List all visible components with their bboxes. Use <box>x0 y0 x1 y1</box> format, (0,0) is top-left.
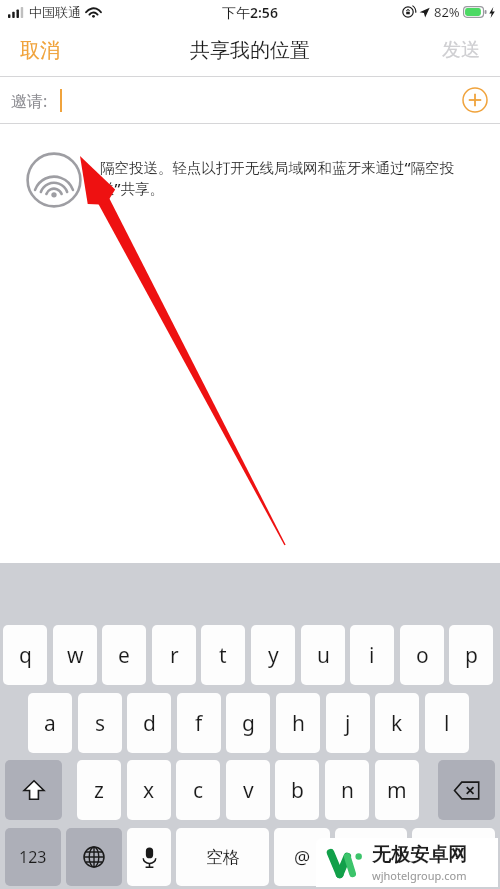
button[interactable]: i <box>350 625 394 685</box>
button[interactable]: Add contact <box>460 85 490 115</box>
staticText: h <box>292 709 305 738</box>
button[interactable]: p <box>449 625 493 685</box>
staticText: d <box>143 709 156 738</box>
staticText: 取消 <box>20 38 60 63</box>
button[interactable]: c <box>176 760 220 820</box>
staticText: f <box>195 709 203 738</box>
staticText: 中国联通 <box>29 4 81 20</box>
button[interactable]: o <box>400 625 444 685</box>
button[interactable] <box>66 828 122 886</box>
staticText: n <box>341 776 354 805</box>
staticText: z <box>94 776 104 805</box>
staticText: j <box>345 709 351 738</box>
staticText: v <box>243 776 254 805</box>
button[interactable]: u <box>301 625 345 685</box>
staticText: b <box>291 776 304 805</box>
staticText: u <box>317 641 330 670</box>
staticText: s <box>95 709 106 738</box>
staticText: k <box>391 709 403 738</box>
staticText: t <box>219 641 227 670</box>
button[interactable]: j <box>326 693 370 753</box>
staticText: 隔空投送。轻点以打开无线局域网和蓝牙来通过“隔空投送”共享。 <box>100 157 460 198</box>
staticText: x <box>143 776 155 805</box>
button[interactable]: e <box>102 625 146 685</box>
button[interactable]: n <box>325 760 369 820</box>
button[interactable]: 空格 <box>176 828 269 886</box>
button[interactable] <box>5 760 62 820</box>
button[interactable] <box>412 828 495 886</box>
button[interactable]: f <box>177 693 221 753</box>
staticText: 邀请: <box>11 90 48 112</box>
button[interactable]: z <box>77 760 121 820</box>
staticText: wjhotelgroup.com <box>372 868 467 883</box>
staticText: 无极安卓网 <box>372 843 467 867</box>
button[interactable]: 取消 <box>0 28 80 73</box>
button[interactable]: l <box>425 693 469 753</box>
button[interactable]: 发送 <box>422 28 500 72</box>
button[interactable]: @ <box>274 828 330 886</box>
button[interactable]: g <box>226 693 270 753</box>
button[interactable]: b <box>275 760 319 820</box>
staticText: m <box>387 776 407 805</box>
staticText: l <box>444 709 450 738</box>
button[interactable]: w <box>53 625 97 685</box>
button[interactable]: q <box>3 625 47 685</box>
staticText: g <box>242 709 255 738</box>
button[interactable]: 隔空投送。轻点以打开无线局域网和蓝牙来通过“隔空投送”共享。 <box>0 148 500 204</box>
staticText: 发送 <box>442 38 480 62</box>
button[interactable] <box>127 828 171 886</box>
staticText: p <box>465 641 478 670</box>
staticText: 下午2:56 <box>222 3 278 22</box>
staticText: y <box>268 641 279 670</box>
button[interactable]: m <box>375 760 419 820</box>
button[interactable]: k <box>375 693 419 753</box>
button[interactable]: h <box>276 693 320 753</box>
button[interactable] <box>335 828 407 886</box>
staticText: 123 <box>19 846 47 868</box>
staticText: @ <box>294 845 311 870</box>
button[interactable]: 123 <box>5 828 61 886</box>
button[interactable]: y <box>251 625 295 685</box>
button[interactable]: x <box>127 760 171 820</box>
staticText: r <box>170 641 179 670</box>
staticText: e <box>118 641 130 670</box>
button[interactable]: a <box>28 693 72 753</box>
button[interactable]: s <box>78 693 122 753</box>
button[interactable]: d <box>127 693 171 753</box>
staticText: i <box>369 641 375 670</box>
staticText: c <box>193 776 204 805</box>
staticText: 空格 <box>206 847 240 868</box>
staticText: q <box>19 641 32 670</box>
staticText: 82% <box>434 3 460 21</box>
staticText: 共享我的位置 <box>190 38 310 63</box>
button[interactable]: t <box>201 625 245 685</box>
staticText: w <box>67 641 84 670</box>
button[interactable] <box>438 760 495 820</box>
button[interactable]: v <box>226 760 270 820</box>
staticText: o <box>416 641 429 670</box>
staticText: a <box>44 709 56 738</box>
button[interactable]: r <box>152 625 196 685</box>
